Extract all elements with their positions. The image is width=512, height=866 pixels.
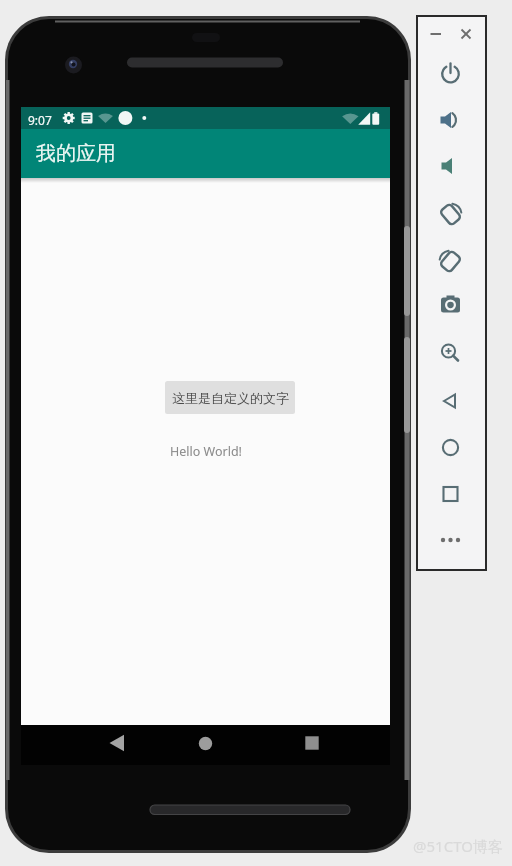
staticText: Hello World! xyxy=(170,443,242,460)
button[interactable] xyxy=(433,289,467,321)
staticText: @51CTO博客 xyxy=(413,836,503,856)
staticText: 我的应用 xyxy=(36,141,116,166)
button[interactable] xyxy=(433,104,467,136)
button[interactable] xyxy=(433,385,467,417)
button[interactable] xyxy=(455,24,477,44)
button[interactable] xyxy=(425,24,447,44)
button[interactable] xyxy=(433,478,467,510)
button[interactable] xyxy=(96,727,138,761)
button[interactable] xyxy=(433,337,467,369)
button[interactable] xyxy=(433,245,467,277)
button[interactable] xyxy=(433,150,467,182)
button[interactable] xyxy=(433,198,467,230)
button[interactable] xyxy=(290,727,332,761)
staticText: 9:07 xyxy=(28,112,52,128)
staticText: 这里是自定义的文字 xyxy=(172,390,289,406)
button[interactable] xyxy=(433,58,467,90)
button[interactable] xyxy=(433,431,467,463)
button[interactable] xyxy=(185,727,227,761)
button[interactable] xyxy=(433,524,467,556)
